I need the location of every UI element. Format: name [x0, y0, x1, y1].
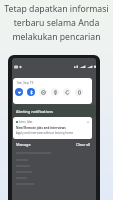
staticText: hires. Jobs	[19, 120, 33, 124]
staticText: New! Remote jobs and interviews	[16, 126, 66, 130]
button[interactable]: Wi-Fi	[15, 88, 23, 96]
staticText: Tetap dapatkan informasi terbaru selama …	[0, 3, 113, 43]
button[interactable]: Bluetooth	[27, 88, 35, 96]
button[interactable]: hires. Jobs	[13, 117, 92, 139]
staticText: Manage	[16, 142, 31, 147]
button[interactable]: Flashlight	[51, 88, 59, 96]
button[interactable]: Battery saver	[75, 88, 83, 96]
button[interactable]: Do not disturb	[39, 88, 47, 96]
button[interactable]: Manage	[16, 142, 31, 147]
staticText: Alerting notifications	[16, 109, 54, 114]
staticText: Sat, Sep 19	[17, 81, 34, 85]
staticText: Apply and interview without leaving home	[16, 131, 74, 135]
staticText: Clear all	[76, 142, 91, 147]
button[interactable]: Clear all	[76, 142, 91, 147]
button[interactable]: Auto rotate	[63, 88, 71, 96]
other: Expand	[86, 120, 90, 124]
